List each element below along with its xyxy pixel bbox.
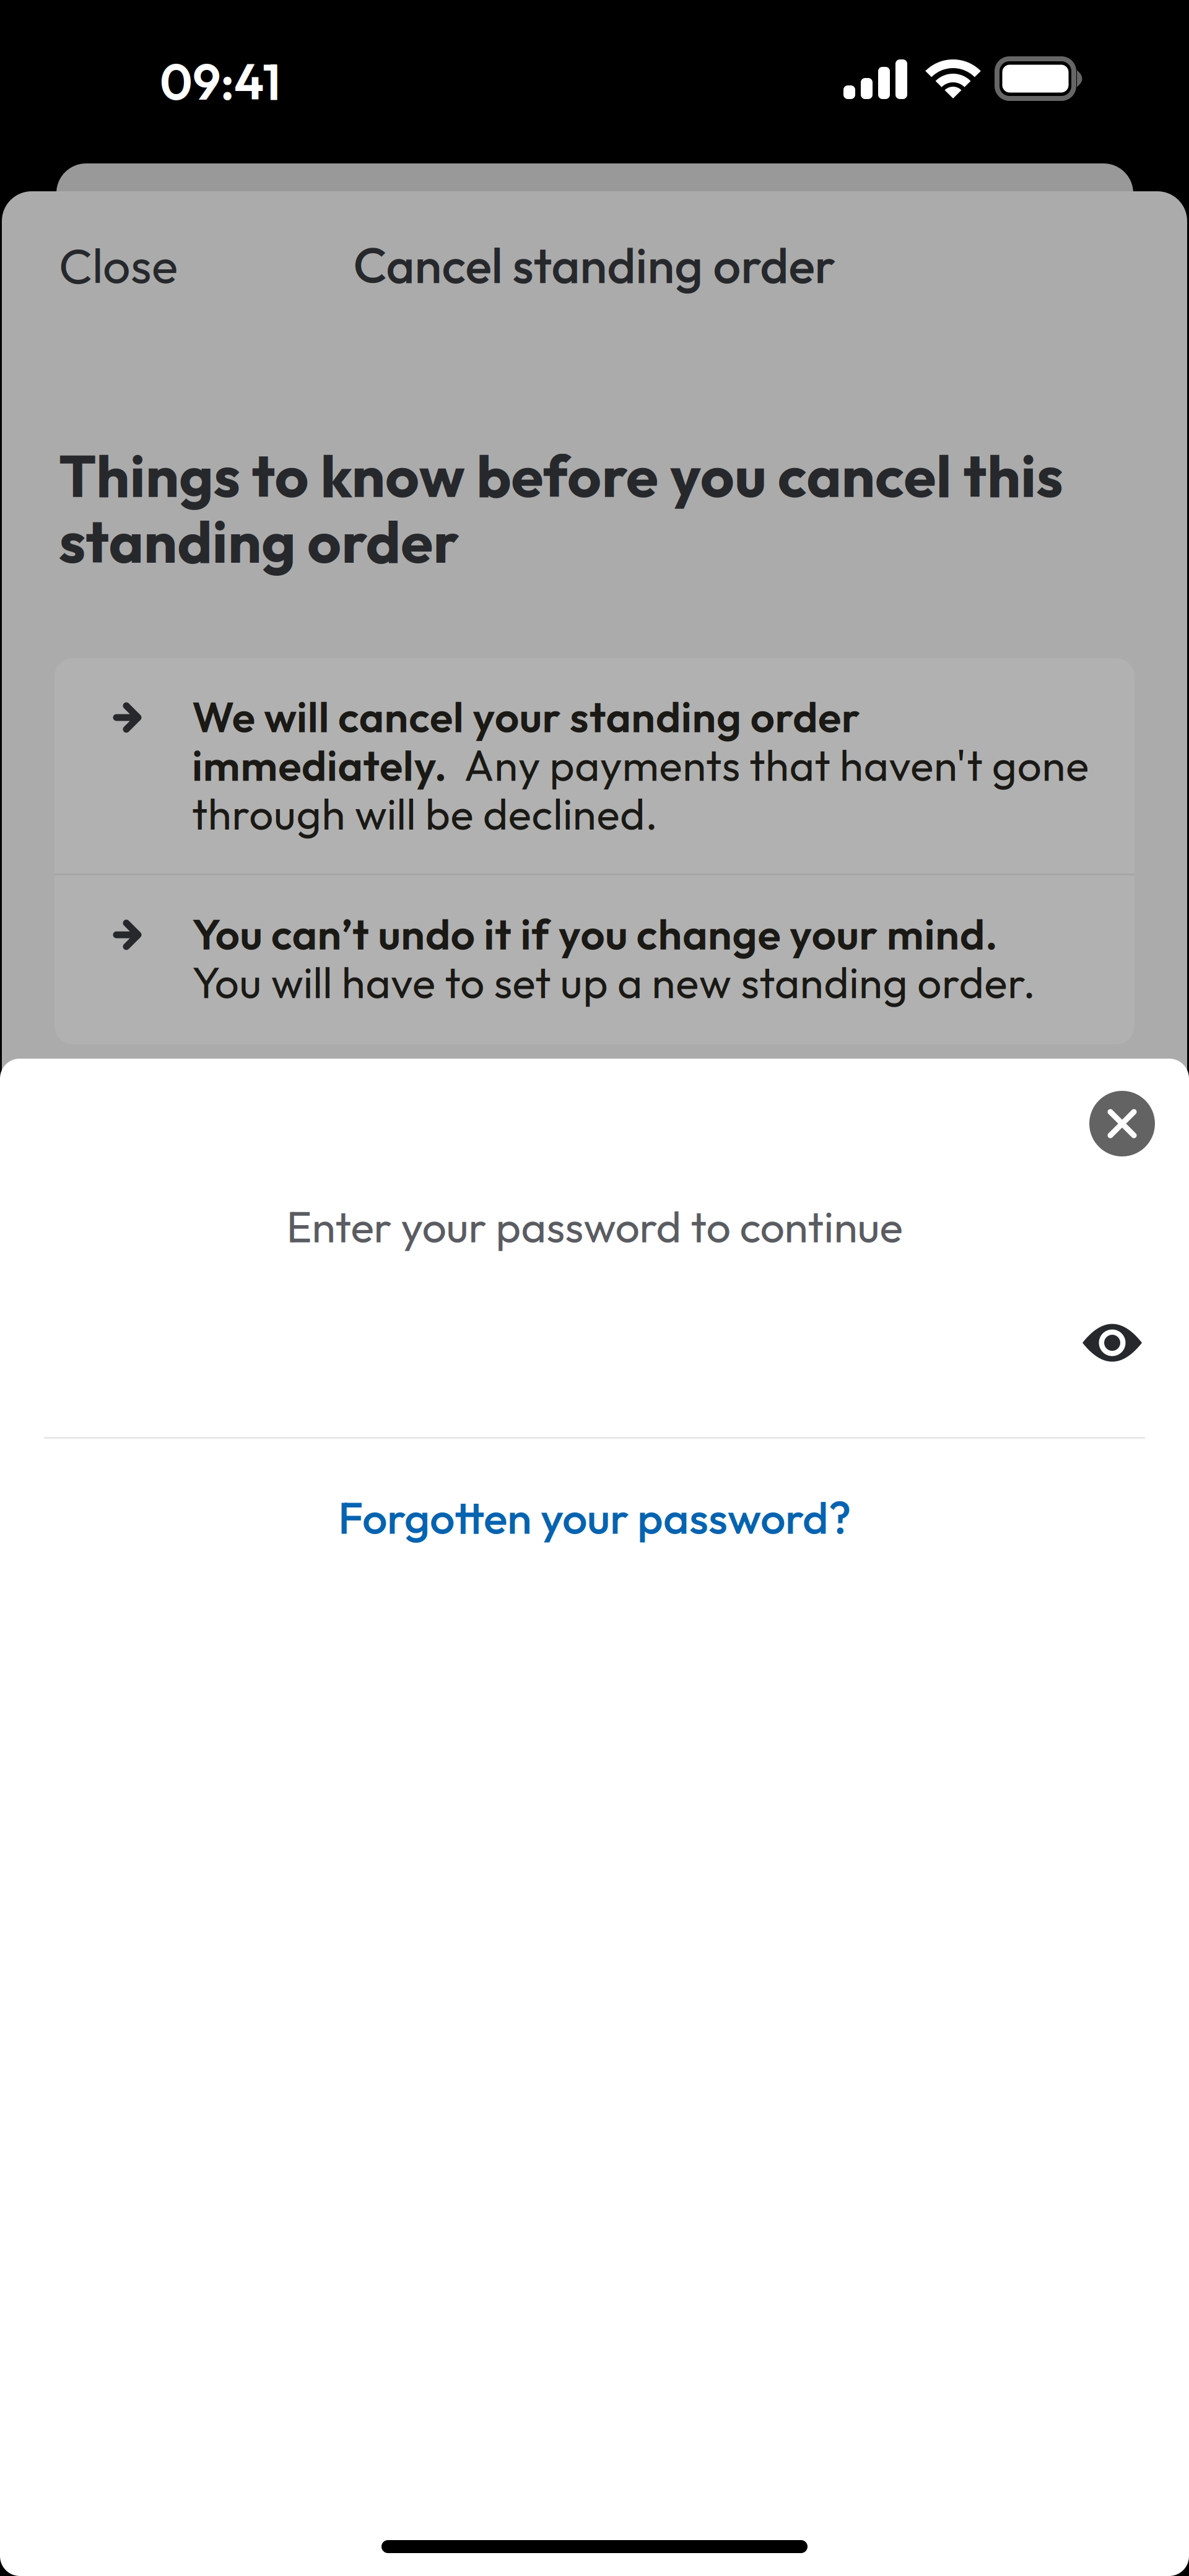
staticText: 09:41 <box>160 50 281 113</box>
staticText: We will cancel your standing order immed… <box>192 690 1089 840</box>
staticText: You can’t undo it if you change your min… <box>192 908 1035 1009</box>
staticText: Close <box>59 234 178 296</box>
button[interactable]: Show password <box>1082 1322 1143 1364</box>
button[interactable]: Close <box>59 231 207 299</box>
staticText: Enter your password to continue <box>286 1199 903 1254</box>
button[interactable]: Close <box>1089 1091 1155 1156</box>
staticText: Things to know before you cancel this st… <box>59 438 1063 578</box>
staticText: Cancel standing order <box>353 234 836 296</box>
staticText: Forgotten your password? <box>338 1489 851 1545</box>
button[interactable]: Forgotten your password? <box>0 1480 1189 1555</box>
